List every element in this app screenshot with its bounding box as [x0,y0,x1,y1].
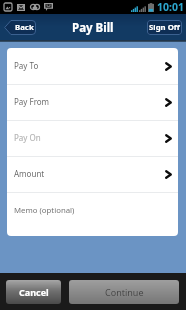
staticText: Pay From [14,96,165,107]
staticText: Amount [14,168,165,179]
staticText: Pay On [14,132,165,143]
staticText: Continue [105,286,144,298]
staticText: Sign Off [149,22,180,33]
button[interactable]: Pay From [7,85,178,120]
button[interactable]: Back [4,20,36,35]
button[interactable]: Sign Off [147,20,182,35]
staticText: Memo (optional) [14,205,75,216]
staticText: Pay To [14,60,165,71]
staticText: Cancel [19,286,49,298]
button[interactable]: Continue [69,280,179,304]
button[interactable]: Pay On [7,121,178,156]
staticText: Pay Bill [72,20,114,36]
staticText: 10:01 [157,0,184,14]
button[interactable]: Cancel [6,280,61,304]
button[interactable]: Pay To [7,48,178,84]
button[interactable]: Amount [7,157,178,192]
staticText: Back [15,22,34,33]
button[interactable]: Memo (optional) [7,193,178,236]
